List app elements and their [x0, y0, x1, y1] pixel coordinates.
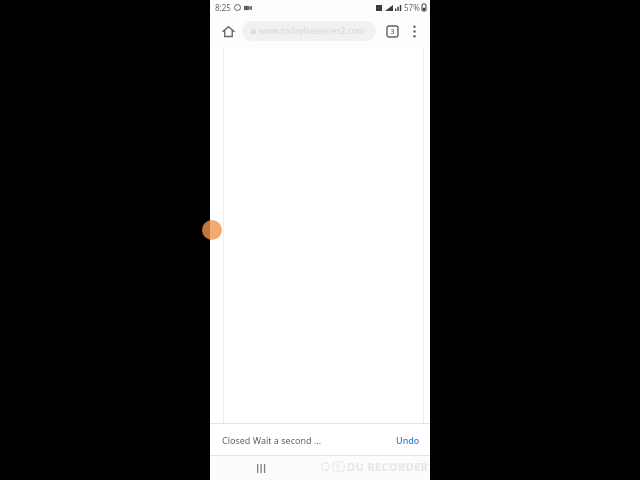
button[interactable]: Switch tabs, 3 open	[382, 21, 402, 41]
staticText: 8:25	[215, 2, 231, 13]
staticText: Closed Wait a second ...	[222, 434, 322, 446]
staticText: www.todayliveseries2.com	[259, 25, 365, 37]
staticText: 57%	[404, 2, 420, 13]
staticText: 3	[390, 27, 395, 37]
button[interactable]: Home	[218, 21, 238, 41]
button[interactable]: Closed Wait a second ...	[210, 424, 430, 455]
staticText: DU RECORDER	[347, 459, 429, 474]
button[interactable]: More options	[404, 21, 424, 41]
button[interactable]: Undo	[390, 430, 426, 450]
button[interactable]: Recent apps	[250, 457, 272, 479]
button[interactable]: Floating assistant	[202, 220, 222, 240]
staticText: Undo	[396, 434, 420, 446]
button[interactable]: www.todayliveseries2.com	[242, 21, 376, 41]
